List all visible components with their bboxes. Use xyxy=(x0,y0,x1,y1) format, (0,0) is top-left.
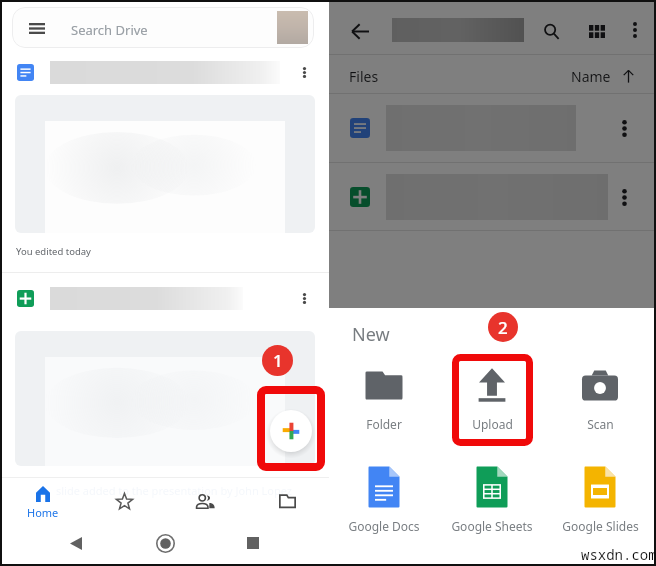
staticText: Scan xyxy=(587,416,614,432)
button[interactable] xyxy=(15,95,315,233)
staticText: Search Drive xyxy=(71,21,148,39)
staticText: Home xyxy=(27,505,59,520)
button[interactable]: Back xyxy=(43,524,109,562)
other: More options xyxy=(296,290,313,307)
staticText: Files xyxy=(349,67,379,86)
other: More options xyxy=(296,64,313,81)
button[interactable]: Recent apps xyxy=(220,524,286,562)
staticText: New xyxy=(352,322,390,347)
staticText: Folder xyxy=(366,416,402,432)
button[interactable]: Search xyxy=(529,9,573,53)
button[interactable]: Menu xyxy=(12,7,314,48)
button[interactable]: Create new xyxy=(270,410,312,452)
staticText: Name xyxy=(571,67,611,86)
staticText: Upload xyxy=(472,416,513,432)
staticText: 2 xyxy=(498,316,508,339)
button[interactable]: Home xyxy=(132,524,198,562)
staticText: Google Docs xyxy=(348,518,420,534)
button[interactable]: More options xyxy=(329,163,654,231)
button[interactable]: Upload xyxy=(438,361,546,432)
other: Menu xyxy=(29,23,45,34)
button[interactable]: Google Sheets xyxy=(438,459,546,534)
button[interactable]: Google Slides xyxy=(546,459,654,534)
button[interactable]: More options xyxy=(609,182,639,212)
button[interactable] xyxy=(15,331,315,466)
button[interactable]: Shared with me xyxy=(164,478,246,522)
button[interactable]: Google Docs xyxy=(329,459,438,534)
button[interactable]: Folder xyxy=(329,361,438,432)
button[interactable]: Name xyxy=(571,67,637,86)
button[interactable]: More options xyxy=(619,14,651,46)
staticText: Google Sheets xyxy=(451,518,533,534)
button[interactable]: More options xyxy=(329,94,654,162)
button[interactable]: Home xyxy=(2,478,84,522)
button[interactable]: More options xyxy=(0,60,329,84)
staticText: wsxdn.com xyxy=(581,545,656,564)
button[interactable]: More options xyxy=(0,286,329,310)
button[interactable]: Switch to grid view xyxy=(575,9,619,53)
button[interactable]: Scan xyxy=(546,361,654,432)
staticText: You edited today xyxy=(16,245,91,258)
button[interactable]: More options xyxy=(609,113,639,143)
staticText: Google Slides xyxy=(562,518,639,534)
staticText: 1 xyxy=(273,349,283,372)
button[interactable]: Files xyxy=(246,478,328,522)
staticText: slide added to the presentation by John … xyxy=(56,483,293,498)
button[interactable]: Starred xyxy=(83,478,165,522)
button[interactable]: Back xyxy=(338,9,382,53)
